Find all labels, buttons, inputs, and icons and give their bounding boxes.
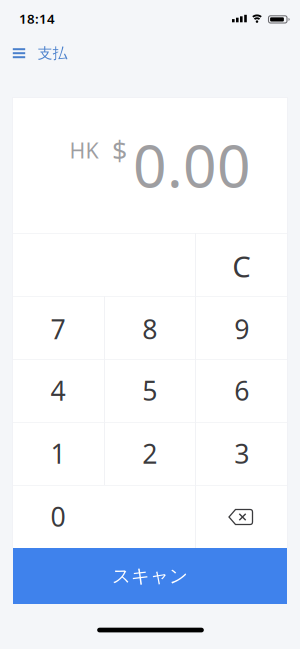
staticText: スキャン [112,564,188,587]
button[interactable]: 6 [196,359,288,422]
staticText: 2 [142,436,157,471]
button[interactable]: 5 [104,359,195,422]
staticText: 6 [234,373,249,408]
staticText: $ [112,133,127,168]
staticText: 0.00 [133,126,251,204]
staticText: 18:14 [19,10,55,27]
staticText: 8 [142,311,157,347]
button[interactable]: 2 [104,422,195,485]
button[interactable]: 0 [12,485,104,548]
staticText: 4 [50,373,65,408]
button[interactable]: スキャン [13,548,287,604]
button[interactable]: 3 [196,422,288,485]
staticText: 9 [234,311,249,347]
button[interactable]: 1 [12,422,104,485]
staticText: 3 [234,436,249,471]
staticText: 5 [142,373,157,408]
button[interactable]: 8 [104,296,195,359]
staticText: HK [69,136,98,164]
button[interactable]: 4 [12,359,104,422]
staticText: 1 [50,436,65,471]
staticText: 支払 [38,44,68,62]
button[interactable]: Delete [196,485,288,548]
button[interactable]: 7 [12,296,104,359]
staticText: C [232,246,251,285]
staticText: 0 [50,499,65,534]
staticText: 7 [50,311,65,347]
button[interactable]: 9 [196,296,288,359]
button[interactable]: Menu [4,38,34,68]
button[interactable]: C [196,233,288,296]
